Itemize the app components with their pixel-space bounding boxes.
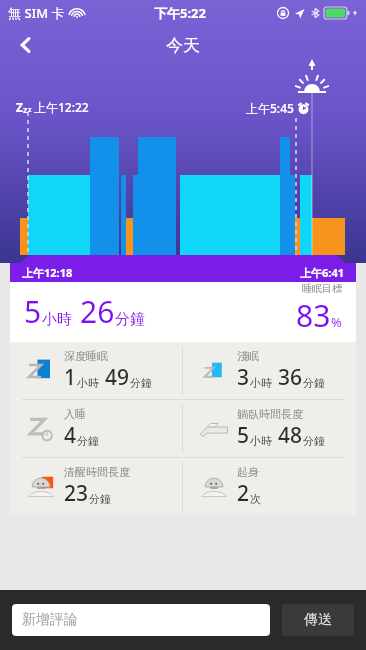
staticText: 無 SIM 卡: [8, 4, 65, 22]
staticText: 入睡: [64, 407, 86, 421]
staticText: 深度睡眠: [64, 349, 108, 363]
staticText: 49: [105, 363, 130, 392]
staticText: 新增評論: [22, 611, 78, 629]
staticText: 上午12:18: [22, 265, 73, 280]
staticText: 48: [278, 421, 303, 450]
staticText: Z: [16, 99, 23, 115]
staticText: 3: [237, 363, 250, 392]
staticText: 上午6:41: [300, 265, 344, 280]
staticText: 分鐘: [130, 376, 152, 390]
staticText: 5: [24, 291, 42, 332]
button[interactable]: 深度睡眠: [10, 342, 182, 399]
staticText: 小時: [42, 310, 72, 329]
staticText: 淺眠: [237, 349, 259, 363]
button[interactable]: 淺眠: [183, 342, 356, 399]
staticText: 26: [80, 291, 115, 332]
button[interactable]: 新增評論: [12, 604, 270, 636]
button[interactable]: Back: [6, 26, 46, 64]
button[interactable]: 躺臥時間長度: [183, 400, 356, 457]
staticText: 分鐘: [77, 434, 99, 448]
staticText: z: [23, 103, 28, 115]
staticText: z: [28, 105, 32, 115]
staticText: 分鐘: [115, 310, 145, 329]
staticText: 睡眠目標: [302, 282, 342, 295]
staticText: 躺臥時間長度: [237, 407, 303, 421]
staticText: 傳送: [304, 611, 332, 629]
button[interactable]: 清醒時間長度: [10, 458, 182, 515]
button[interactable]: 入睡: [10, 400, 182, 457]
staticText: 分鐘: [89, 492, 111, 506]
staticText: 5: [237, 421, 250, 450]
staticText: 小時: [250, 434, 272, 448]
button[interactable]: 起身: [183, 458, 356, 515]
staticText: 分鐘: [303, 434, 325, 448]
staticText: 23: [64, 479, 89, 508]
staticText: 2: [237, 479, 250, 508]
staticText: 下午5:22: [154, 4, 206, 22]
staticText: 36: [278, 363, 303, 392]
staticText: 4: [64, 421, 77, 450]
staticText: 83: [296, 295, 331, 334]
staticText: 小時: [250, 376, 272, 390]
staticText: 1: [64, 363, 77, 392]
staticText: 起身: [237, 465, 259, 479]
button[interactable]: 傳送: [282, 604, 354, 636]
staticText: 上午12:22: [34, 99, 89, 115]
staticText: 分鐘: [303, 376, 325, 390]
staticText: 次: [250, 492, 261, 506]
staticText: 今天: [166, 35, 200, 56]
staticText: %: [331, 313, 342, 331]
staticText: 上午5:45: [246, 100, 294, 116]
staticText: 清醒時間長度: [64, 465, 130, 479]
staticText: 小時: [77, 376, 99, 390]
